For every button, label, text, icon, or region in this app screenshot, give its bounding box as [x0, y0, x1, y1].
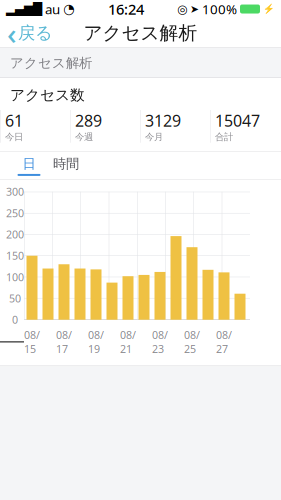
staticText: ‹ — [7, 13, 17, 52]
staticText: 今週 — [75, 131, 93, 143]
button[interactable]: ‹ — [0, 18, 60, 48]
staticText: 250 — [6, 206, 24, 220]
staticText: au — [45, 0, 60, 18]
staticText: 08/15 — [24, 328, 40, 356]
staticText: 08/21 — [120, 328, 136, 356]
staticText: 08/27 — [216, 328, 232, 356]
staticText: 戻る — [18, 22, 53, 44]
staticText: 日 — [22, 155, 35, 172]
button[interactable]: 時間 — [46, 153, 86, 179]
staticText: アクセス解析 — [10, 55, 92, 71]
staticText: ➤ — [190, 3, 199, 15]
staticText: 16:24 — [108, 0, 144, 19]
staticText: 200 — [6, 227, 24, 241]
staticText: 08/19 — [88, 328, 104, 356]
staticText: 08/23 — [152, 328, 168, 356]
staticText: 300 — [6, 185, 24, 199]
staticText: 3129 — [145, 110, 181, 131]
staticText: ◔ — [63, 1, 75, 16]
staticText: アクセス数 — [10, 86, 85, 104]
staticText: 289 — [75, 110, 102, 131]
staticText: 今月 — [145, 131, 163, 143]
staticText: ▂▄▆█ — [6, 2, 42, 16]
staticText: 今日 — [5, 131, 23, 143]
staticText: ◎ — [177, 2, 187, 16]
staticText: 合計 — [215, 131, 233, 143]
staticText: 時間 — [53, 155, 79, 172]
staticText: 50 — [9, 291, 21, 305]
button[interactable]: 日 — [12, 153, 46, 179]
staticText: ⚡ — [263, 4, 275, 14]
staticText: 08/25 — [184, 328, 200, 356]
staticText: 15047 — [215, 110, 260, 131]
staticText: 150 — [6, 249, 24, 263]
staticText: 08/17 — [56, 328, 72, 356]
staticText: アクセス解析 — [83, 21, 197, 44]
staticText: 0 — [12, 313, 18, 327]
staticText: 100% — [202, 0, 237, 18]
staticText: 61 — [5, 110, 23, 131]
staticText: 100 — [6, 270, 24, 284]
